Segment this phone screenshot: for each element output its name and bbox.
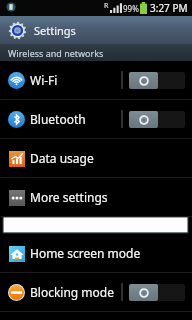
button[interactable]: Toggle xyxy=(129,284,185,301)
button[interactable]: Data usage xyxy=(0,139,192,177)
staticText: 99% xyxy=(123,3,139,14)
staticText: Wireless and networks xyxy=(8,47,104,59)
button[interactable]: Blocking mode xyxy=(0,273,192,311)
staticText: Blocking mode xyxy=(30,284,114,300)
staticText: 3:27 PM xyxy=(150,1,188,15)
staticText: More settings xyxy=(30,189,108,205)
button[interactable]: Home screen mode xyxy=(0,234,192,272)
button[interactable]: Wi-Fi xyxy=(0,61,192,99)
button[interactable]: Toggle xyxy=(129,72,185,89)
staticText: Home screen mode xyxy=(30,245,141,261)
button[interactable]: More settings xyxy=(0,178,192,216)
other: Settings icon xyxy=(8,21,27,40)
staticText: Data usage xyxy=(30,150,94,166)
staticText: Bluetooth xyxy=(30,111,86,127)
staticText: Settings xyxy=(34,23,76,38)
staticText: Wi-Fi xyxy=(30,72,58,88)
button[interactable]: Toggle xyxy=(129,111,185,128)
staticText: R xyxy=(104,1,109,11)
button[interactable]: Bluetooth xyxy=(0,100,192,138)
